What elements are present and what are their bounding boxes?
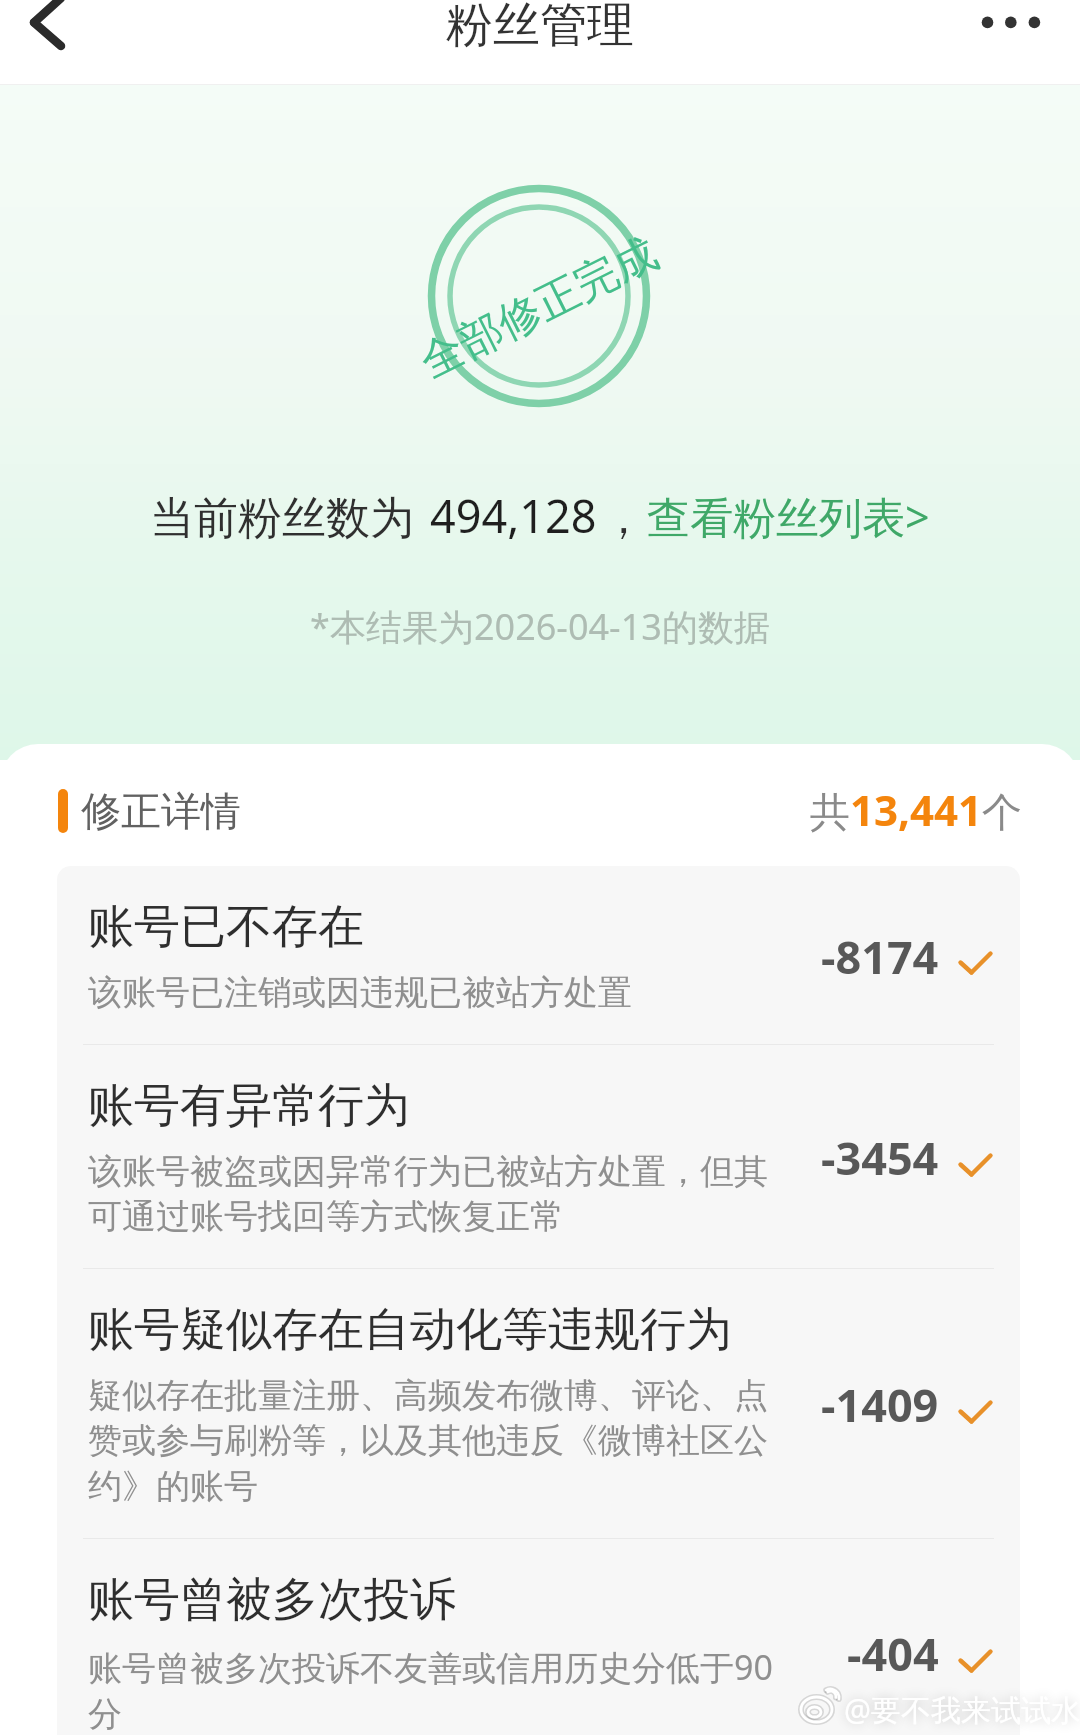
- staticText: 疑似存在批量注册、高频发布微博、评论、点赞或参与刷粉等，以及其他违反《微博社区公…: [88, 1374, 794, 1508]
- staticText: 查看粉丝列表>: [647, 487, 930, 546]
- staticText: 该账号被盗或因异常行为已被站方处置，但其可通过账号找回等方式恢复正常: [88, 1150, 794, 1238]
- staticText: -1409: [821, 1374, 939, 1435]
- button[interactable]: More options: [965, 0, 1080, 80]
- staticText: 粉丝管理: [446, 0, 634, 55]
- button[interactable]: 账号曾被多次投诉: [57, 1539, 1020, 1735]
- staticText: 账号有异常行为: [88, 1077, 410, 1135]
- staticText: 修正详情: [81, 786, 241, 836]
- staticText: 账号疑似存在自动化等违规行为: [88, 1301, 732, 1359]
- staticText: @要不我来试试水: [844, 1689, 1080, 1730]
- staticText: 账号曾被多次投诉: [88, 1571, 456, 1629]
- button[interactable]: 账号有异常行为: [57, 1045, 1020, 1269]
- staticText: 全部修正完成: [411, 226, 666, 390]
- staticText: 当前粉丝数为: [150, 491, 414, 546]
- button[interactable]: 查看粉丝列表>: [647, 487, 930, 546]
- button[interactable]: Back: [0, 0, 95, 80]
- staticText: 共13,441个: [810, 781, 1023, 838]
- staticText: -3454: [821, 1127, 939, 1188]
- staticText: -404: [847, 1623, 939, 1684]
- staticText: 该账号已注销或因违规已被站方处置: [88, 971, 632, 1014]
- staticText: 账号曾被多次投诉不友善或信用历史分低于90分: [88, 1644, 794, 1735]
- staticText: 账号已不存在: [88, 898, 364, 956]
- staticText: *本结果为2026-04-13的数据: [0, 602, 1080, 651]
- staticText: ，: [602, 492, 645, 546]
- button[interactable]: 账号疑似存在自动化等违规行为: [57, 1269, 1020, 1539]
- staticText: 494,128: [430, 485, 597, 546]
- staticText: -8174: [821, 926, 939, 987]
- button[interactable]: 账号已不存在: [57, 866, 1020, 1045]
